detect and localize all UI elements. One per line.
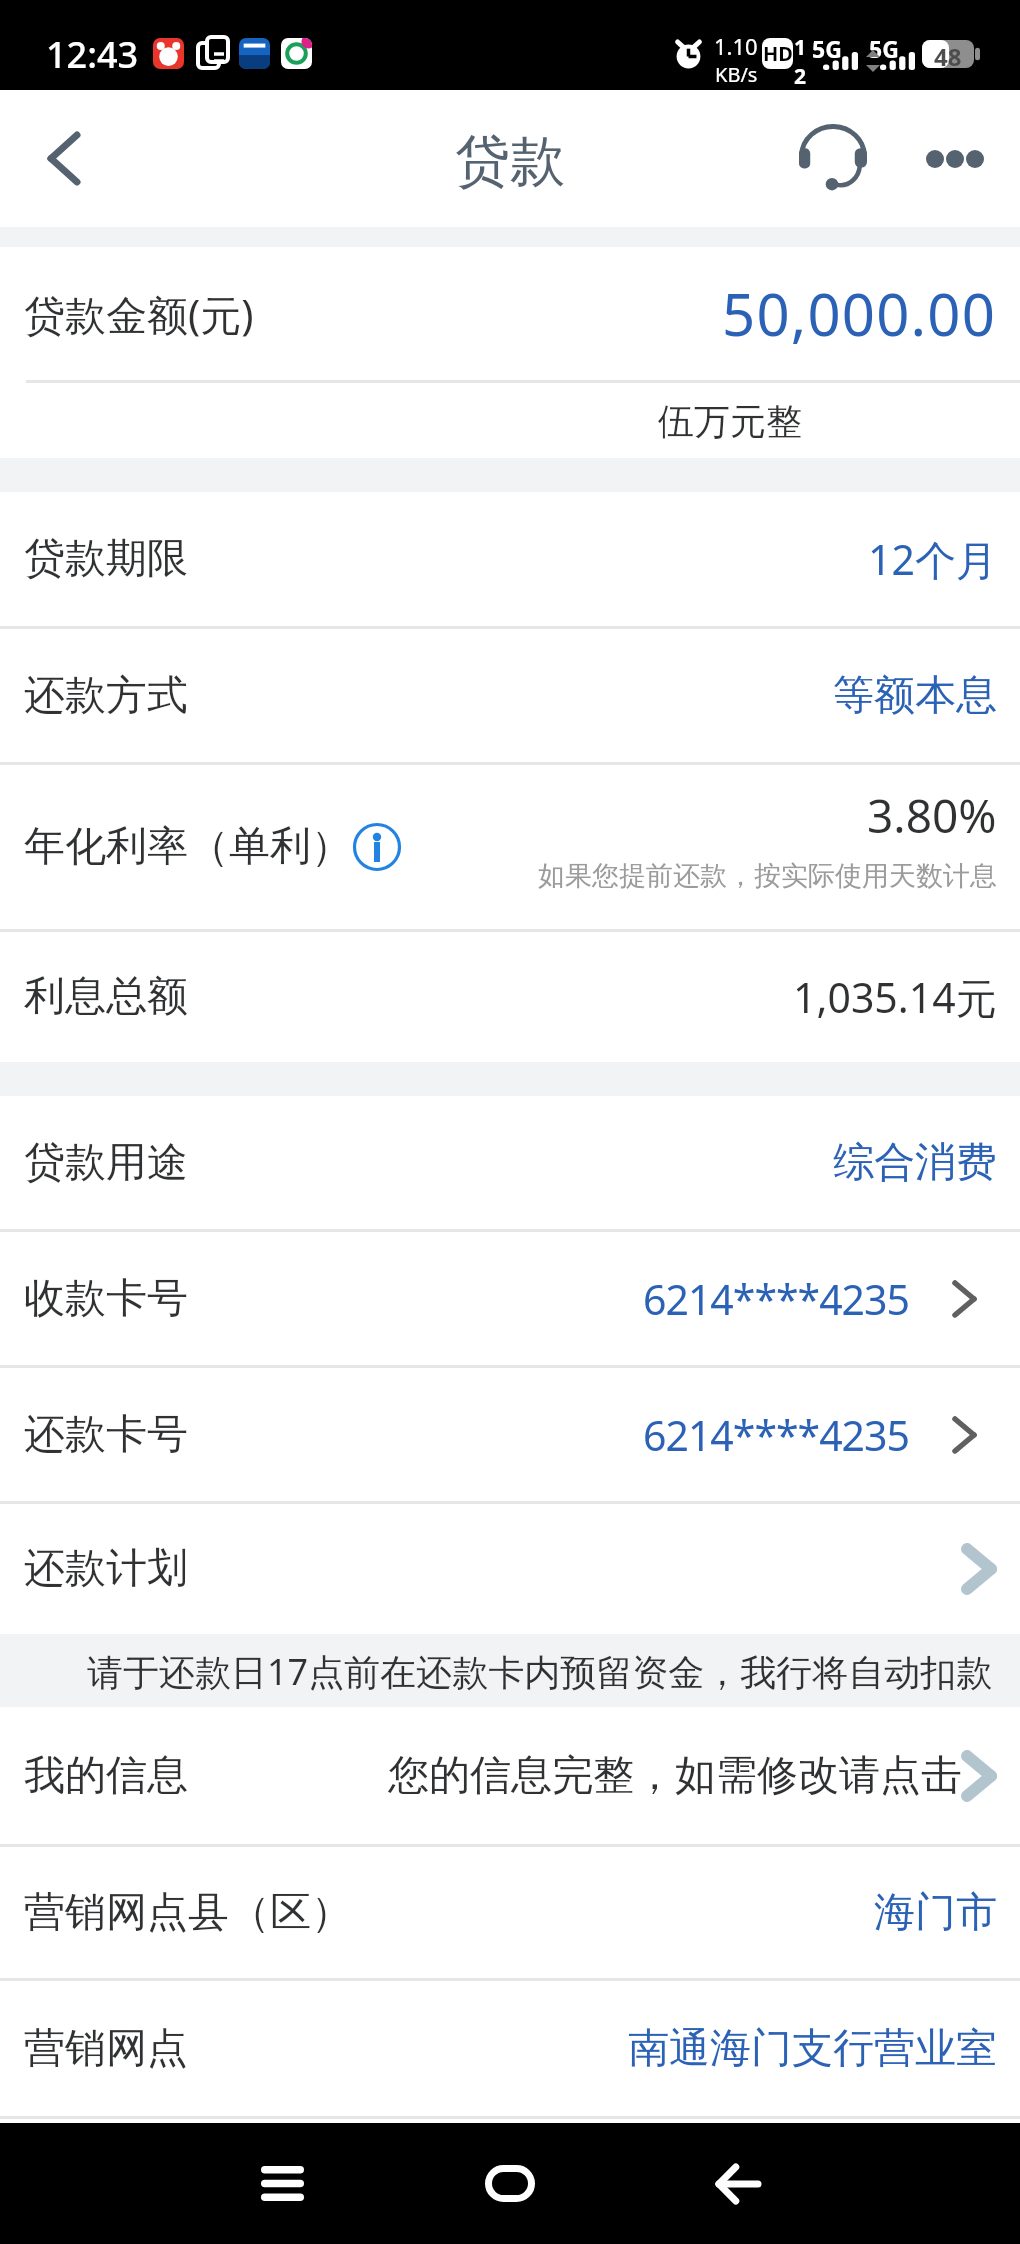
staticText: 2: [794, 62, 807, 91]
staticText: 年化利率（单利）: [24, 821, 352, 873]
staticText: 50,000.00: [722, 274, 997, 353]
staticText: 5G: [812, 33, 842, 64]
staticText: 还款计划: [24, 1543, 188, 1595]
button[interactable]: Back: [2, 90, 126, 227]
button[interactable]: 贷款期限: [0, 492, 1020, 626]
button[interactable]: Back: [678, 2123, 798, 2244]
staticText: 6214****4235: [643, 1271, 909, 1327]
button[interactable]: 利息总额: [0, 932, 1020, 1062]
button[interactable]: 还款计划: [0, 1504, 1020, 1634]
staticText: 伍万元整: [658, 399, 802, 444]
staticText: 贷款期限: [24, 533, 188, 585]
staticText: 收款卡号: [24, 1273, 188, 1325]
button[interactable]: 贷款用途: [0, 1096, 1020, 1229]
staticText: 5G: [869, 33, 899, 64]
button[interactable]: More options: [891, 90, 1018, 227]
button[interactable]: 贷款金额(元): [0, 247, 1020, 380]
staticText: 48: [934, 40, 962, 68]
staticText: 1: [794, 33, 807, 62]
staticText: 1.10: [714, 31, 758, 61]
button[interactable]: Customer service: [777, 90, 889, 227]
staticText: 6214****4235: [643, 1407, 909, 1463]
staticText: 还款卡号: [24, 1409, 188, 1461]
staticText: 贷款: [455, 127, 565, 196]
button[interactable]: 营销网点县（区）: [0, 1847, 1020, 1978]
staticText: 我的信息: [24, 1750, 188, 1802]
staticText: 12个月: [868, 531, 997, 587]
button[interactable]: 我的信息: [0, 1707, 1020, 1844]
staticText: 南通海门支行营业室: [628, 2023, 997, 2075]
staticText: HD: [763, 40, 793, 67]
button[interactable]: 年化利率（单利）: [0, 765, 1020, 929]
staticText: 营销网点县（区）: [24, 1887, 352, 1939]
staticText: 您的信息完整，如需修改请点击: [388, 1750, 962, 1802]
staticText: 还款方式: [24, 670, 188, 722]
button[interactable]: 还款方式: [0, 629, 1020, 762]
button[interactable]: 还款卡号: [0, 1368, 1020, 1501]
button[interactable]: 营销网点: [0, 1981, 1020, 2116]
staticText: KB/s: [715, 61, 758, 88]
staticText: 营销网点: [24, 2023, 188, 2075]
staticText: 贷款金额(元): [24, 286, 254, 342]
staticText: 利息总额: [24, 971, 188, 1023]
button[interactable]: Home: [450, 2123, 570, 2244]
staticText: 请于还款日17点前在还款卡内预留资金，我行将自动扣款: [87, 1647, 993, 1696]
button[interactable]: 伍万元整: [0, 383, 1020, 458]
staticText: 贷款用途: [24, 1137, 188, 1189]
staticText: 3.80%: [867, 784, 997, 847]
button[interactable]: 收款卡号: [0, 1232, 1020, 1365]
staticText: 海门市: [874, 1887, 997, 1939]
button[interactable]: Recents: [222, 2123, 342, 2244]
staticText: 如果您提前还款，按实际使用天数计息: [538, 859, 997, 893]
staticText: 等额本息: [833, 670, 997, 722]
staticText: 1,035.14元: [793, 969, 997, 1025]
staticText: 12:43: [46, 30, 139, 79]
staticText: 综合消费: [833, 1137, 997, 1189]
